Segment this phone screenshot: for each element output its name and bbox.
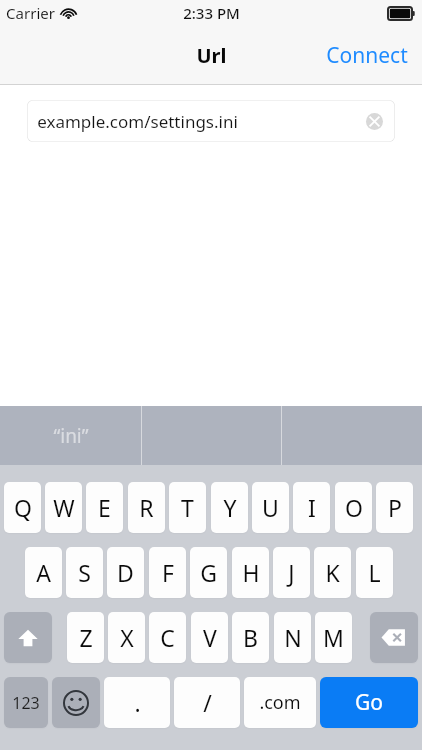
staticText: Z: [79, 622, 93, 653]
button[interactable]: W: [45, 482, 82, 533]
button[interactable]: Y: [211, 482, 248, 533]
staticText: 2:33 PM: [183, 3, 240, 23]
button[interactable]: I: [293, 482, 330, 533]
button[interactable]: Q: [4, 482, 41, 533]
staticText: example.com/settings.ini: [37, 110, 238, 133]
staticText: Y: [223, 492, 237, 523]
staticText: X: [120, 622, 134, 653]
staticText: E: [98, 492, 111, 523]
button[interactable]: A: [25, 547, 62, 598]
staticText: K: [325, 557, 340, 588]
staticText: S: [78, 557, 91, 588]
button[interactable]: “ini”: [0, 406, 141, 465]
staticText: “ini”: [53, 423, 89, 449]
staticText: M: [323, 622, 344, 653]
staticText: Go: [355, 688, 383, 717]
staticText: Q: [14, 492, 32, 523]
button[interactable]: M: [315, 612, 352, 663]
button[interactable]: Clear text: [361, 108, 387, 134]
button[interactable]: Emoji: [52, 677, 100, 728]
button[interactable]: U: [252, 482, 289, 533]
staticText: H: [242, 557, 260, 588]
button[interactable]: V: [191, 612, 228, 663]
button[interactable]: N: [274, 612, 311, 663]
button[interactable]: P: [376, 482, 413, 533]
staticText: B: [243, 622, 258, 653]
staticText: J: [288, 557, 295, 588]
button[interactable]: O: [335, 482, 372, 533]
button[interactable]: Shift: [4, 612, 52, 663]
button[interactable]: Z: [67, 612, 104, 663]
staticText: Carrier: [6, 3, 55, 23]
staticText: O: [345, 492, 363, 523]
staticText: R: [139, 492, 154, 523]
button[interactable]: .com: [244, 677, 316, 728]
button[interactable]: E: [86, 482, 123, 533]
button[interactable]: B: [232, 612, 269, 663]
staticText: /: [203, 687, 212, 718]
staticText: I: [308, 492, 316, 523]
staticText: U: [262, 492, 279, 523]
button[interactable]: K: [314, 547, 351, 598]
button[interactable]: H: [232, 547, 269, 598]
staticText: T: [181, 492, 194, 523]
staticText: N: [284, 622, 302, 653]
button[interactable]: example.com/settings.ini: [27, 100, 395, 142]
button[interactable]: J: [273, 547, 310, 598]
staticText: D: [117, 557, 134, 588]
staticText: .: [134, 687, 141, 718]
staticText: A: [36, 557, 51, 588]
button[interactable]: Backspace: [370, 612, 418, 663]
button[interactable]: X: [108, 612, 145, 663]
button[interactable]: S: [66, 547, 103, 598]
button[interactable]: 123: [4, 677, 48, 728]
button[interactable]: [141, 406, 281, 465]
button[interactable]: Go: [320, 677, 418, 728]
button[interactable]: R: [128, 482, 165, 533]
staticText: G: [200, 557, 217, 588]
staticText: C: [160, 622, 175, 653]
button[interactable]: C: [149, 612, 186, 663]
staticText: F: [162, 557, 174, 588]
button[interactable]: .: [104, 677, 170, 728]
button[interactable]: /: [174, 677, 240, 728]
button[interactable]: F: [149, 547, 186, 598]
staticText: Url: [196, 42, 227, 69]
staticText: P: [388, 492, 402, 523]
button[interactable]: D: [107, 547, 144, 598]
staticText: .com: [259, 690, 301, 715]
button[interactable]: G: [190, 547, 227, 598]
staticText: L: [368, 557, 381, 588]
button[interactable]: Connect: [320, 33, 414, 78]
button[interactable]: L: [356, 547, 393, 598]
staticText: V: [203, 622, 217, 653]
staticText: W: [53, 492, 75, 523]
button[interactable]: T: [169, 482, 206, 533]
staticText: Connect: [326, 41, 408, 70]
staticText: 123: [12, 692, 40, 714]
